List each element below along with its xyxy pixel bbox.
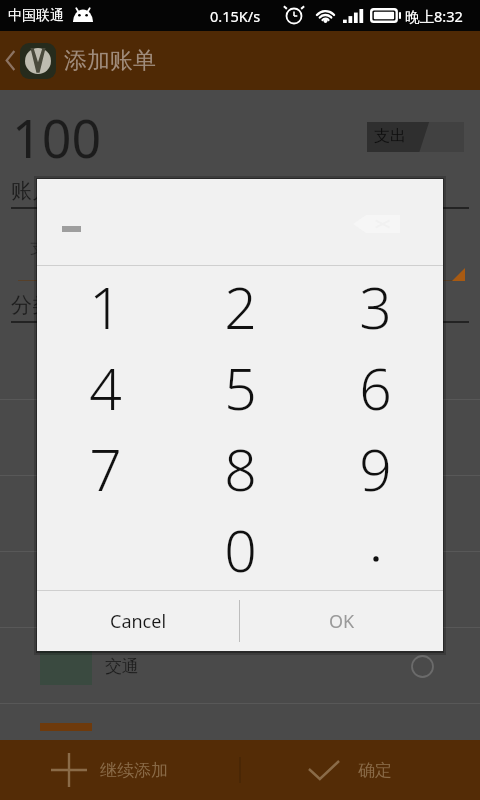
staticText: 7 [89,430,122,508]
staticText: 分类 [11,292,53,318]
button[interactable] [308,509,443,590]
staticText: 住房 [105,732,139,753]
button[interactable]: 8 [173,428,308,509]
staticText: 确定 [358,760,392,781]
button[interactable]: 数码 [0,552,480,628]
staticText: 餐饮 [105,352,139,373]
staticText: 3 [359,268,392,346]
button[interactable]: 继续添加 [0,740,240,800]
staticText: OK [329,609,355,634]
button[interactable]: 餐饮 [0,324,480,400]
button[interactable]: 6 [308,347,443,428]
button[interactable]: Back [0,31,20,90]
button[interactable]: 9 [308,428,443,509]
staticText: 晚上8:32 [405,6,463,26]
staticText: 交通 [105,656,139,677]
staticText: 中国联通 [8,7,64,25]
button[interactable]: 2 [173,266,308,347]
button[interactable]: 4 [37,347,173,428]
staticText: 1 [89,268,122,346]
button[interactable]: 1 [37,266,173,347]
staticText: 9 [359,430,392,508]
button[interactable]: 7 [37,428,173,509]
button[interactable]: 5 [173,347,308,428]
button[interactable]: OK [240,591,443,651]
staticText: 继续添加 [100,760,168,781]
staticText: 数码 [105,580,139,601]
staticText: 6 [359,349,392,427]
staticText: 账户 [11,178,53,204]
staticText: 100 [12,102,102,173]
staticText: 2 [224,268,257,346]
button[interactable]: 支出 [367,122,464,152]
staticText: 支付宝 [30,238,78,258]
button[interactable]: 交通 [0,628,480,704]
button[interactable]: 3 [308,266,443,347]
button[interactable]: 日用 [0,476,480,552]
button[interactable]: 购物 [0,400,480,476]
staticText: 5 [224,349,257,427]
staticText: 0.15K/s [210,6,261,26]
staticText: 4 [89,349,122,427]
staticText: 支出 [374,126,406,146]
button[interactable]: 确定 [240,740,480,800]
button[interactable]: 住房 [0,704,480,780]
staticText: Cancel [110,609,167,634]
staticText: 0 [224,511,257,589]
button[interactable]: Cancel [37,591,239,651]
staticText: 添加账单 [64,46,156,75]
button[interactable]: 0 [173,509,308,590]
staticText: 8 [224,430,257,508]
